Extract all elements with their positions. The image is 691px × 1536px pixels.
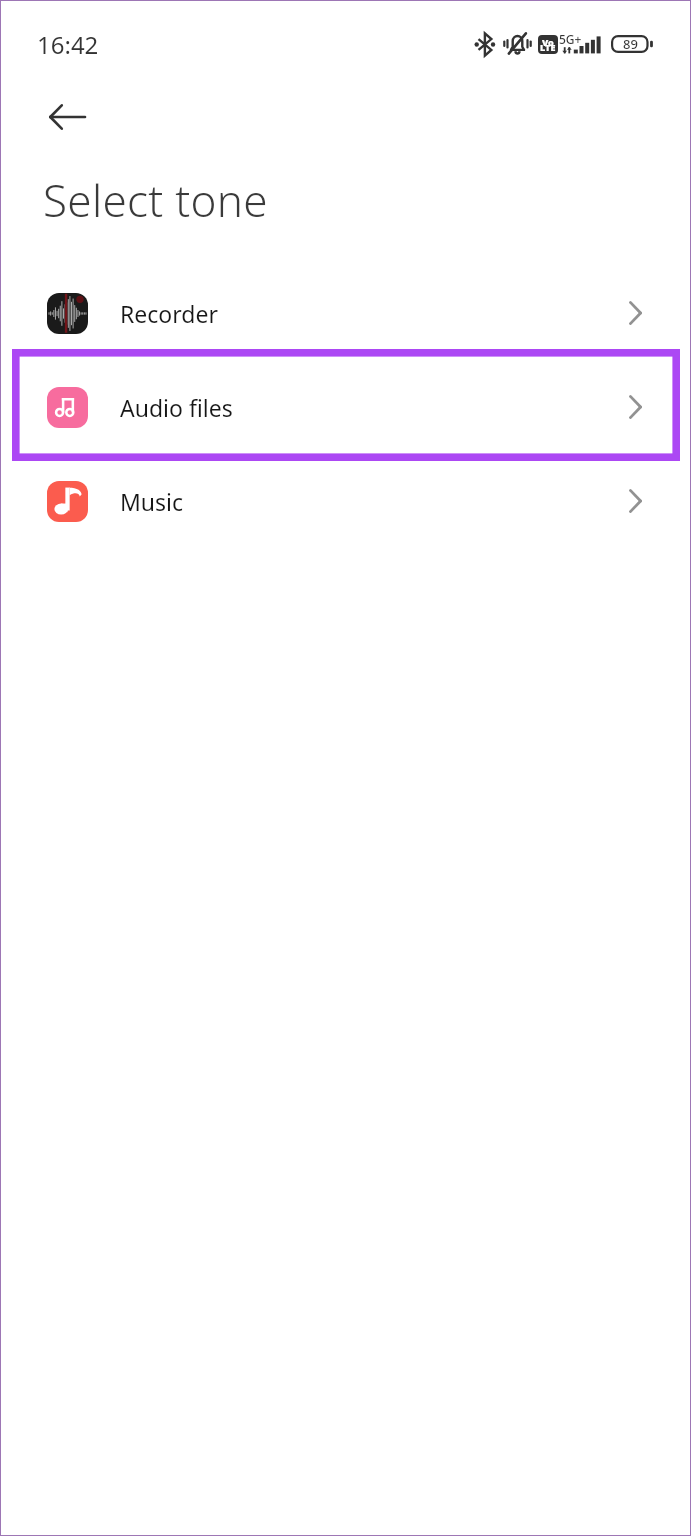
staticText: 5G+: [559, 31, 582, 47]
button[interactable]: Audio files: [0, 360, 691, 454]
button[interactable]: Back: [43, 93, 91, 141]
staticText: Music: [120, 486, 184, 517]
staticText: 89: [623, 35, 638, 53]
staticText: Select tone: [43, 170, 268, 230]
staticText: Recorder: [120, 298, 218, 329]
staticText: Vo: [542, 36, 554, 48]
staticText: Audio files: [120, 392, 233, 423]
button[interactable]: Music: [0, 454, 691, 548]
staticText: LTE: [540, 41, 556, 53]
button[interactable]: Recorder: [0, 266, 691, 360]
staticText: 16:42: [37, 28, 99, 61]
